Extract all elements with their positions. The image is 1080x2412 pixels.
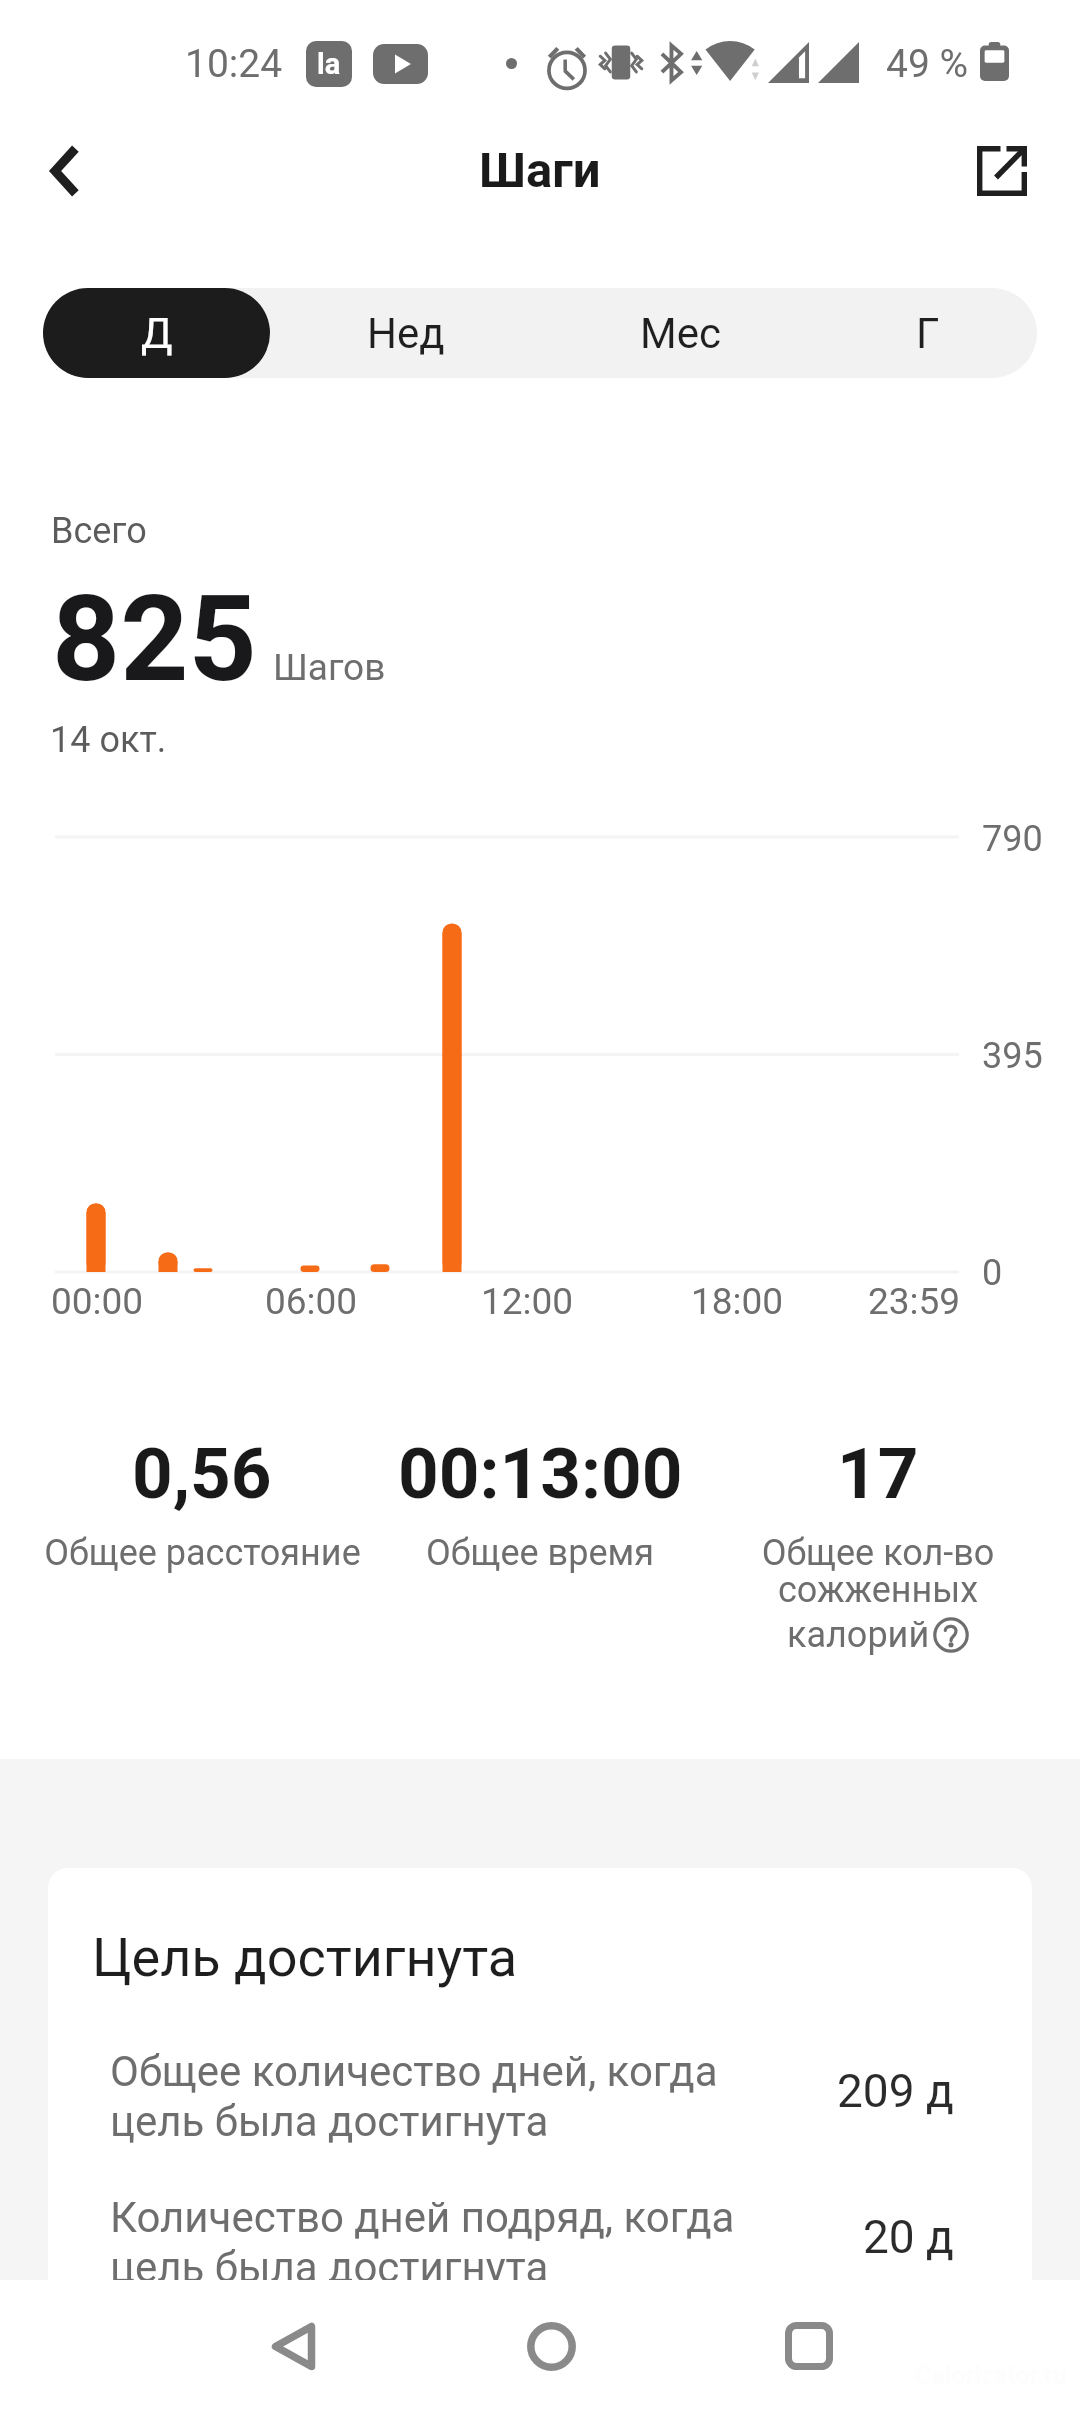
staticText: 790 — [982, 818, 1043, 860]
staticText: 00:00 — [51, 1280, 144, 1323]
staticText: 06:00 — [265, 1280, 358, 1323]
staticText: калорий — [787, 1614, 930, 1656]
staticText: 395 — [982, 1035, 1043, 1077]
staticText: 23:59 — [868, 1280, 961, 1323]
button[interactable]: Общее количество дней, когда цель была д… — [110, 2041, 954, 2151]
staticText: Д — [141, 309, 173, 358]
staticText: 12:00 — [481, 1280, 574, 1323]
staticText: 49 % — [886, 41, 969, 87]
staticText: Шаги — [479, 142, 601, 199]
staticText: la — [317, 47, 341, 81]
button[interactable]: Share — [962, 131, 1042, 211]
staticText: 18:00 — [691, 1280, 784, 1323]
staticText: 825 — [52, 570, 257, 709]
staticText: 0 — [982, 1252, 1003, 1294]
button[interactable]: Home — [491, 2286, 611, 2406]
button[interactable]: Мес — [560, 288, 800, 378]
staticText: 0,56 — [132, 1432, 272, 1515]
staticText: 10:24 — [185, 41, 283, 87]
staticText: Всего — [51, 510, 147, 552]
staticText: Цель достигнута — [92, 1926, 518, 1989]
button[interactable]: Recents — [749, 2286, 869, 2406]
staticText: 14 окт. — [50, 719, 167, 761]
button[interactable]: Количество дней подряд, когда цель была … — [110, 2187, 954, 2297]
button[interactable]: Нед — [286, 288, 526, 378]
staticText: Шагов — [273, 646, 386, 689]
staticText: 00:13:00 — [398, 1432, 683, 1515]
staticText: Количество дней подряд, когда цель была … — [110, 2193, 863, 2292]
staticText: Общее расстояние — [44, 1532, 361, 1574]
staticText: Общее кол-во сожженных — [709, 1532, 1047, 1610]
staticText: 209 д — [837, 2064, 954, 2118]
staticText: 20 д — [863, 2210, 954, 2264]
staticText: Мес — [640, 309, 721, 358]
staticText: Нед — [367, 309, 445, 358]
button[interactable]: Г — [808, 288, 1048, 378]
button[interactable]: Back — [233, 2286, 353, 2406]
staticText: Общее время — [426, 1532, 654, 1574]
button[interactable]: Back — [21, 127, 109, 215]
staticText: 17 — [837, 1432, 919, 1515]
staticText: Общее количество дней, когда цель была д… — [110, 2047, 837, 2146]
staticText: Г — [916, 309, 940, 358]
button[interactable]: Д — [43, 288, 270, 378]
